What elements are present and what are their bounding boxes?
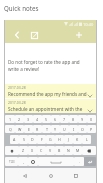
staticText: 8 [72,117,75,122]
button[interactable]: Y [51,125,60,133]
button[interactable]: G [46,135,55,144]
staticText: Recommend the app my friends and pare... [8,91,99,97]
staticText: I [73,127,75,132]
staticText: 9 [81,117,84,122]
staticText: Quick notes [4,4,39,12]
staticText: L [86,137,88,142]
button[interactable]: 4 [33,115,42,123]
button[interactable]: Backspace [82,146,96,155]
button[interactable]: 2 [15,115,24,123]
button[interactable]: L [82,135,91,144]
button[interactable]: F [37,135,46,144]
button[interactable]: R [33,125,42,133]
staticText: G [49,137,52,142]
button[interactable]: . [74,157,84,166]
staticText: J [68,137,69,142]
button[interactable]: C [37,146,46,155]
button[interactable]: M [73,146,82,155]
staticText: . [79,159,80,164]
button[interactable]: Back [10,28,24,42]
button[interactable]: W [15,125,24,133]
button[interactable]: H [55,135,64,144]
button[interactable]: Recent apps [70,170,82,182]
staticText: O [81,127,84,132]
staticText: 10:40 [83,22,94,27]
button[interactable]: N [64,146,73,155]
staticText: X [31,148,34,153]
button[interactable]: S [19,135,28,144]
button[interactable]: J [64,135,73,144]
button[interactable]: K [73,135,82,144]
button[interactable]: 2017-03-28 [5,99,96,113]
button[interactable]: Emoji [28,157,38,166]
staticText: W [18,127,22,132]
button[interactable]: 0 [87,115,96,123]
button[interactable]: Shift [5,146,19,155]
staticText: R [36,127,39,132]
button[interactable]: P [87,125,96,133]
staticText: 2017-03-28 [8,100,26,105]
staticText: 3 [27,117,30,122]
button[interactable]: ?123 [5,157,18,166]
button[interactable]: 5 [42,115,51,123]
staticText: E [28,127,30,132]
staticText: M [76,148,80,153]
staticText: P [90,127,93,132]
button[interactable]: A [10,135,19,144]
button[interactable]: 1 [5,115,15,123]
button[interactable]: B [55,146,64,155]
staticText: F [41,137,43,142]
staticText: 2017-03-28 [8,85,26,90]
staticText: S [23,137,25,142]
staticText: 1 [9,117,12,122]
staticText: K [76,137,79,142]
staticText: C [40,148,43,153]
button[interactable]: Home [45,170,57,182]
button[interactable]: 8 [69,115,78,123]
button[interactable]: I [69,125,78,133]
staticText: D [31,137,34,142]
button[interactable]: Add note [72,28,86,42]
button[interactable]: 9 [78,115,87,123]
staticText: H [58,137,61,142]
staticText: B [58,148,61,153]
staticText: U [63,127,66,132]
button[interactable]: Back [19,170,31,182]
button[interactable]: 7 [60,115,69,123]
staticText: Schedule an appointment with the custom.… [8,106,99,112]
staticText: 7 [63,117,66,122]
staticText: 0 [90,117,93,122]
staticText: Q [9,127,12,132]
staticText: A [13,137,16,142]
button[interactable]: 6 [51,115,60,123]
staticText: Do not forget to rate the app and [8,59,80,65]
button[interactable]: V [46,146,55,155]
staticText: 5 [45,117,48,122]
button[interactable] [38,157,74,166]
staticText: V [49,148,52,153]
staticText: 4 [36,117,39,122]
button[interactable]: T [42,125,51,133]
staticText: Z [22,148,25,153]
staticText: N [67,148,70,153]
button[interactable]: U [60,125,69,133]
button[interactable]: X [28,146,37,155]
button[interactable]: Q [5,125,15,133]
staticText: T [46,127,48,132]
button[interactable]: 3 [24,115,33,123]
staticText: , [23,159,24,164]
button[interactable]: E [24,125,33,133]
button[interactable]: , [18,157,28,166]
button[interactable]: Z [19,146,28,155]
button[interactable]: Edit note [27,28,41,42]
staticText: 2 [18,117,21,122]
staticText: Y [54,127,57,132]
staticText: write a review! [8,66,40,72]
staticText: ?123 [9,160,15,164]
staticText: 6 [54,117,57,122]
button[interactable]: Enter [84,157,96,166]
button[interactable]: O [78,125,87,133]
button[interactable]: D [28,135,37,144]
button[interactable]: 2017-03-28 [5,84,96,98]
